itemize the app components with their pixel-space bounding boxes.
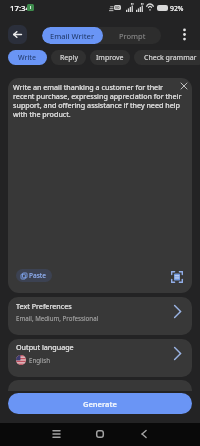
- button[interactable]: Email Writer: [42, 27, 103, 44]
- staticText: Generate: [83, 399, 117, 409]
- staticText: Write an email thanking a customer for t…: [13, 82, 182, 120]
- staticText: Write: [18, 53, 37, 63]
- button[interactable]: Home: [89, 423, 110, 444]
- button[interactable]: Paste: [16, 269, 52, 282]
- button[interactable]: More options: [176, 26, 193, 43]
- staticText: Email, Medium, Professional: [16, 314, 99, 322]
- button[interactable]: Recent apps: [46, 423, 67, 444]
- staticText: Check grammar: [144, 53, 197, 63]
- button[interactable]: Output language: [8, 339, 192, 377]
- staticText: English: [29, 356, 51, 364]
- button[interactable]: Clear text: [179, 81, 189, 91]
- staticText: VO: [115, 6, 120, 10]
- button[interactable]: Write: [8, 50, 47, 65]
- staticText: Prompt: [119, 31, 146, 41]
- staticText: Text Preferences: [16, 301, 72, 311]
- staticText: Reply: [60, 53, 78, 63]
- button[interactable]: Generate: [8, 393, 192, 414]
- staticText: Email Writer: [50, 31, 95, 41]
- button[interactable]: Check grammar: [134, 50, 200, 65]
- staticText: Improve: [96, 53, 124, 63]
- button[interactable]: Prompt: [103, 27, 161, 44]
- button[interactable]: Improve: [90, 50, 130, 65]
- button[interactable]: Reply: [51, 50, 86, 65]
- button[interactable]: Back: [133, 423, 154, 444]
- staticText: 92%: [170, 4, 184, 13]
- staticText: 17:34: [10, 3, 30, 14]
- button[interactable]: [8, 380, 192, 391]
- staticText: Output language: [16, 342, 74, 352]
- button[interactable]: Back: [8, 25, 27, 44]
- button[interactable]: Scan text: [169, 269, 184, 284]
- button[interactable]: Text Preferences: [8, 297, 192, 335]
- staticText: Paste: [29, 271, 47, 280]
